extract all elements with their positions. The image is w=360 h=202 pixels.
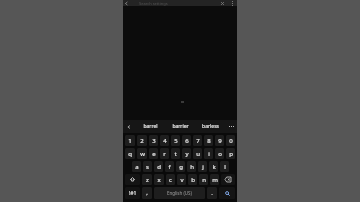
staticText: . <box>211 189 213 197</box>
button[interactable]: barrel <box>135 120 165 133</box>
button[interactable]: q <box>125 148 135 159</box>
button[interactable]: !#1 <box>125 187 140 199</box>
staticText: barless <box>202 123 219 130</box>
staticText: v <box>180 176 184 184</box>
button[interactable]: 6 <box>182 135 191 146</box>
button[interactable]: v <box>177 174 186 185</box>
button[interactable]: e <box>149 148 158 159</box>
button[interactable]: c <box>166 174 175 185</box>
staticText: a <box>135 163 139 171</box>
button[interactable]: Search <box>219 187 235 199</box>
button[interactable]: 0 <box>226 135 235 146</box>
staticText: !#1 <box>129 190 137 197</box>
button[interactable]: a <box>132 161 141 172</box>
staticText: 8 <box>207 137 211 145</box>
button[interactable]: m <box>210 174 219 185</box>
staticText: r <box>163 150 166 158</box>
staticText: h <box>190 163 194 171</box>
button[interactable]: More suggestions <box>225 120 237 133</box>
button[interactable]: l <box>220 161 229 172</box>
button[interactable]: z <box>142 174 152 185</box>
button[interactable]: p <box>226 148 235 159</box>
staticText: p <box>229 150 233 158</box>
staticText: c <box>169 176 172 184</box>
staticText: 5 <box>174 137 178 145</box>
staticText: j <box>202 163 204 171</box>
button[interactable]: f <box>165 161 174 172</box>
button[interactable]: j <box>198 161 207 172</box>
button[interactable]: s <box>143 161 152 172</box>
staticText: u <box>196 150 200 158</box>
staticText: m <box>212 176 218 184</box>
staticText: q <box>128 150 132 158</box>
staticText: 4 <box>163 137 167 145</box>
staticText: g <box>179 163 183 171</box>
button[interactable]: 2 <box>137 135 147 146</box>
staticText: k <box>212 163 216 171</box>
button[interactable]: w <box>137 148 147 159</box>
staticText: , <box>146 189 148 197</box>
staticText: 0 <box>229 137 233 145</box>
button[interactable]: n <box>199 174 208 185</box>
button[interactable]: u <box>193 148 202 159</box>
button[interactable]: Shift <box>125 174 140 185</box>
button[interactable]: Backspace <box>221 174 235 185</box>
button[interactable]: Previous suggestions <box>123 120 135 133</box>
button[interactable]: 8 <box>204 135 213 146</box>
staticText: English (US) <box>167 190 192 196</box>
staticText: i <box>208 150 210 158</box>
button[interactable]: Space <box>154 187 205 199</box>
staticText: f <box>168 163 171 171</box>
button[interactable]: b <box>188 174 197 185</box>
button[interactable]: , <box>142 187 152 199</box>
button[interactable]: x <box>154 174 164 185</box>
button[interactable]: k <box>209 161 218 172</box>
staticText: d <box>157 163 161 171</box>
staticText: barrier <box>172 123 189 130</box>
button[interactable]: h <box>187 161 196 172</box>
staticText: w <box>140 150 145 158</box>
staticText: barrel <box>143 123 158 130</box>
staticText: l <box>224 163 226 171</box>
staticText: n <box>202 176 206 184</box>
button[interactable]: 5 <box>171 135 180 146</box>
staticText: 1 <box>128 137 132 145</box>
staticText: b <box>191 176 195 184</box>
button[interactable]: 9 <box>215 135 224 146</box>
staticText: 6 <box>185 137 189 145</box>
button[interactable]: barrier <box>165 120 195 133</box>
staticText: Search settings <box>139 1 168 6</box>
button[interactable]: 1 <box>125 135 135 146</box>
button[interactable]: More options <box>229 0 235 6</box>
button[interactable]: d <box>154 161 163 172</box>
button[interactable]: i <box>204 148 213 159</box>
staticText: t <box>174 150 177 158</box>
button[interactable]: 4 <box>160 135 169 146</box>
button[interactable]: 7 <box>193 135 202 146</box>
button[interactable]: Back <box>123 0 129 6</box>
button[interactable]: r <box>160 148 169 159</box>
staticText: o <box>218 150 222 158</box>
button[interactable]: 3 <box>149 135 158 146</box>
staticText: 7 <box>196 137 200 145</box>
staticText: z <box>146 176 149 184</box>
staticText: e <box>152 150 156 158</box>
button[interactable]: g <box>176 161 185 172</box>
staticText: x <box>157 176 161 184</box>
button[interactable]: . <box>207 187 217 199</box>
staticText: y <box>185 150 189 158</box>
staticText: 3 <box>152 137 156 145</box>
staticText: 9 <box>218 137 222 145</box>
staticText: 2 <box>140 137 144 145</box>
button[interactable]: t <box>171 148 180 159</box>
staticText: s <box>146 163 149 171</box>
button[interactable]: Clear <box>219 0 225 6</box>
button[interactable]: y <box>182 148 191 159</box>
button[interactable]: o <box>215 148 224 159</box>
button[interactable]: barless <box>195 120 225 133</box>
